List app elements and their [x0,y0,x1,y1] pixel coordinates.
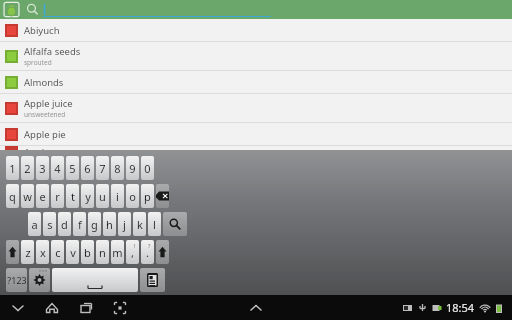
button[interactable]: h [103,212,116,236]
staticText: 8 [114,161,121,176]
button[interactable]: x [36,240,49,264]
button[interactable]: n [96,240,109,264]
staticText: sprouted [24,58,52,67]
staticText: h [106,217,113,232]
button[interactable]: Apple juice [0,94,512,122]
button[interactable]: Backspace [156,184,169,208]
button[interactable] [43,0,271,19]
staticText: 0 [144,161,151,176]
staticText: 9 [129,161,136,176]
staticText: ! [134,242,136,249]
staticText: Abiyuch [24,24,60,37]
button[interactable]: . [141,240,154,264]
staticText: 5 [69,161,76,176]
button[interactable]: Hide keyboard [8,298,28,318]
button[interactable]: Abiyuch [0,19,512,41]
staticText: p [144,189,151,204]
button[interactable]: App icon, navigate up [3,1,20,18]
staticText: 18:54 [446,300,475,315]
button[interactable]: g [88,212,101,236]
staticText: q [9,189,16,204]
staticText: 3 [39,161,46,176]
button[interactable]: k [133,212,146,236]
button[interactable]: i [111,184,124,208]
staticText: m [112,245,123,260]
button[interactable]: a [28,212,41,236]
staticText: e [39,189,46,204]
button[interactable]: 7 [96,156,109,180]
button[interactable]: w [21,184,34,208]
staticText: t [71,189,75,204]
button[interactable]: Keyboard settings [29,268,50,292]
staticText: i [116,189,119,204]
button[interactable]: 0 [141,156,154,180]
staticText: z [25,245,31,260]
button[interactable]: r [51,184,64,208]
button[interactable]: Alfalfa seeds [0,42,512,70]
staticText: u [99,189,106,204]
staticText: Almonds [24,76,64,89]
button[interactable]: p [141,184,154,208]
button[interactable]: 2 [21,156,34,180]
button[interactable]: 5 [66,156,79,180]
staticText: ?123 [7,274,27,286]
button[interactable]: s [43,212,56,236]
staticText: unsweetened [24,110,66,119]
staticText: s [47,217,53,232]
button[interactable]: y [81,184,94,208]
staticText: r [55,189,60,204]
button[interactable]: 3 [36,156,49,180]
staticText: . [146,245,149,260]
button[interactable]: Shift [156,240,169,264]
staticText: c [55,245,61,260]
staticText: v [70,245,76,260]
staticText: o [129,189,136,204]
button[interactable]: Show notifications [246,298,266,318]
button[interactable]: Home [42,298,62,318]
button[interactable]: Search [163,212,187,236]
button[interactable]: f [73,212,86,236]
button[interactable]: Space, English (US) [52,268,138,292]
button[interactable]: 1 [6,156,19,180]
button[interactable]: Apple [0,146,512,150]
button[interactable]: 4 [51,156,64,180]
button[interactable]: t [66,184,79,208]
button[interactable]: e [36,184,49,208]
button[interactable]: 9 [126,156,139,180]
staticText: n [99,245,106,260]
button[interactable]: Screenshot [110,298,130,318]
staticText: k [137,217,143,232]
button[interactable]: Almonds [0,71,512,93]
button[interactable]: l [148,212,161,236]
staticText: Apple juice [24,97,73,110]
staticText: 1 [9,161,16,176]
button[interactable]: q [6,184,19,208]
button[interactable]: Clipboard [140,268,165,292]
button[interactable]: m [111,240,124,264]
staticText: 6 [84,161,91,176]
button[interactable]: d [58,212,71,236]
staticText: w [23,189,32,204]
staticText: 2 [24,161,31,176]
button[interactable]: ?123 [6,268,27,292]
staticText: ? [148,242,151,249]
button[interactable]: Search [26,3,39,16]
button[interactable]: o [126,184,139,208]
staticText: b [84,245,91,260]
button[interactable]: u [96,184,109,208]
button[interactable]: b [81,240,94,264]
staticText: Apple [24,146,50,150]
button[interactable]: 8 [111,156,124,180]
button[interactable]: , [126,240,139,264]
button[interactable]: z [21,240,34,264]
button[interactable]: c [51,240,64,264]
staticText: , [131,245,134,260]
staticText: f [78,217,82,232]
button[interactable]: Shift [6,240,19,264]
button[interactable]: v [66,240,79,264]
button[interactable]: j [118,212,131,236]
button[interactable]: 6 [81,156,94,180]
button[interactable]: Apple pie [0,123,512,145]
staticText: l [153,217,156,232]
button[interactable]: Recent apps [76,298,96,318]
